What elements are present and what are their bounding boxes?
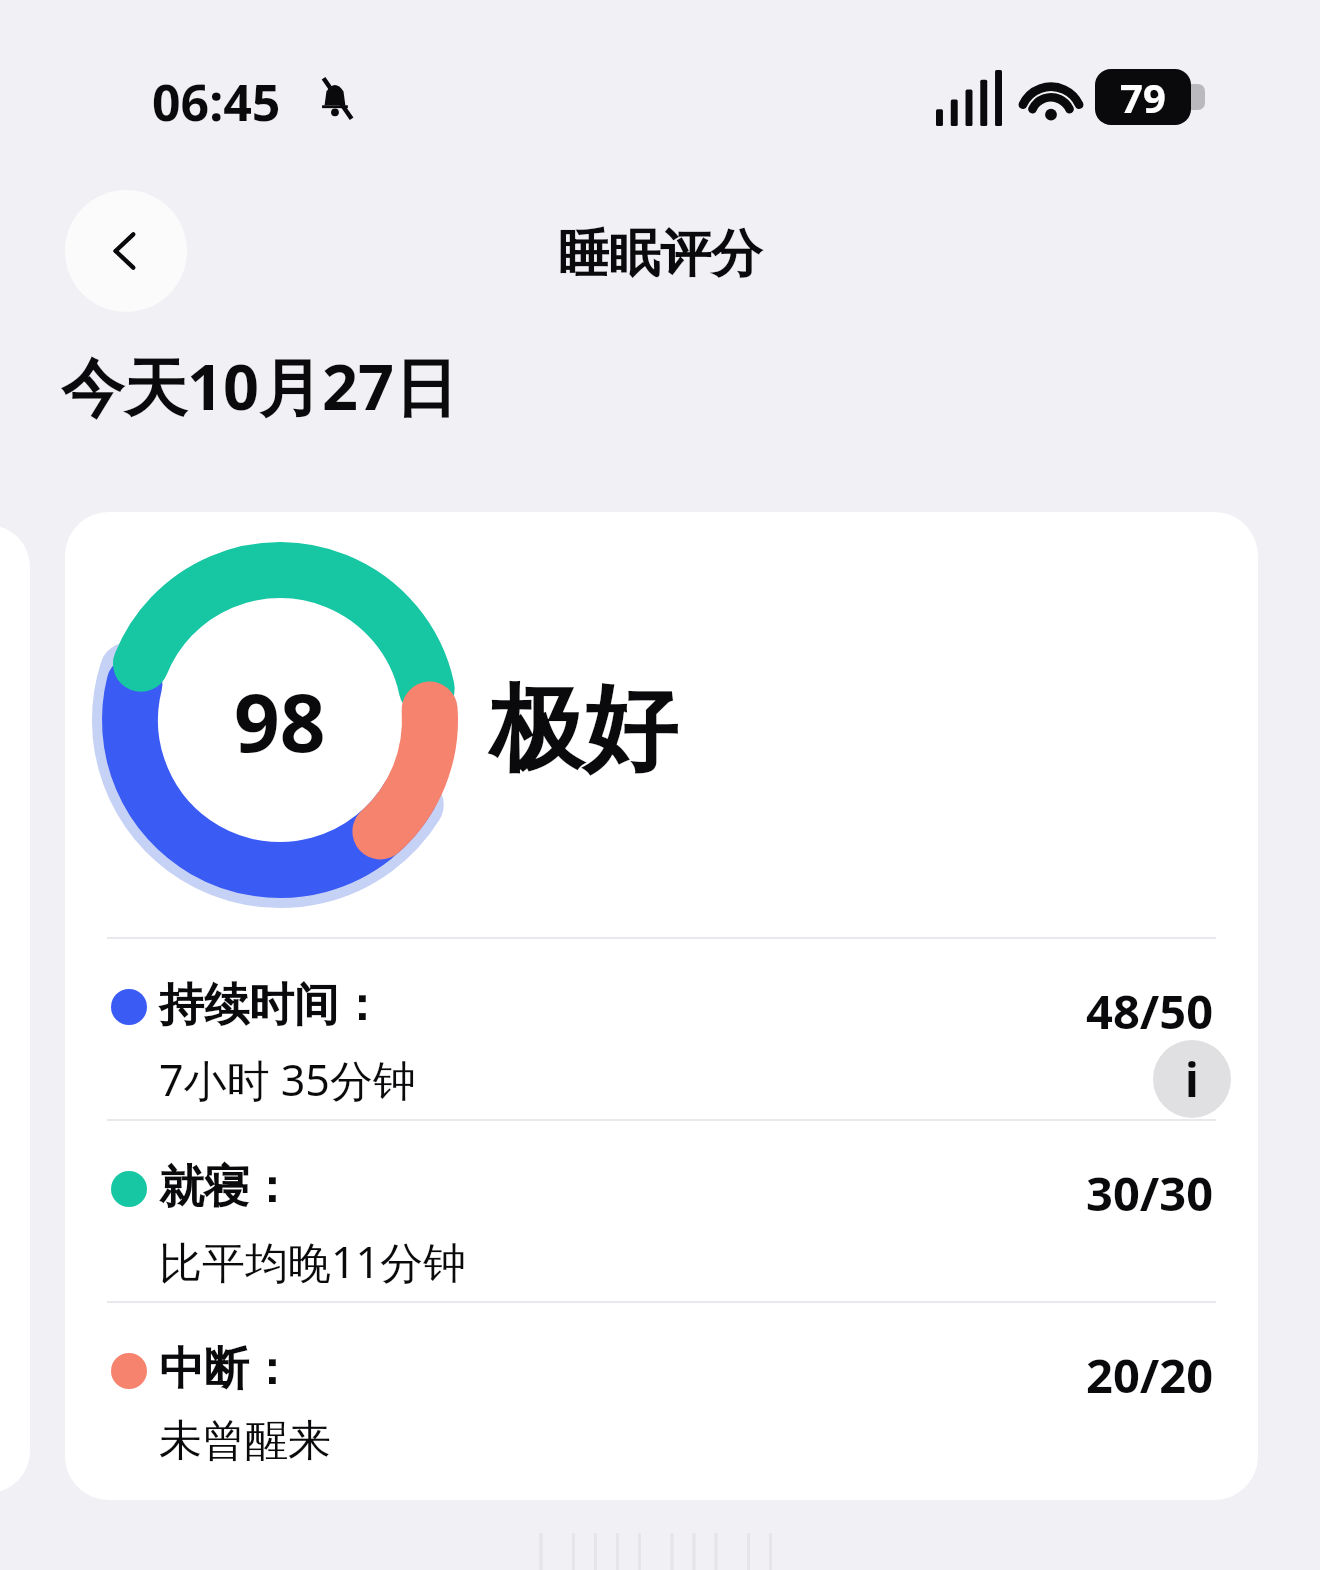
button[interactable]: Back [65,190,187,312]
staticText: | |||| ||| || [530,1520,782,1570]
staticText: 极好 [489,670,677,788]
button[interactable]: Info [1153,1040,1231,1118]
staticText: 比平均晚11分钟 [159,1232,467,1291]
staticText: 30/30 [1086,1161,1214,1225]
staticText: 未曾醒来 [159,1414,331,1468]
staticText: 中断： [159,1341,294,1398]
staticText: 持续时间： [159,977,384,1034]
button[interactable]: 就寝： [65,1121,1258,1301]
staticText: 睡眠评分 [558,222,762,286]
button[interactable]: 持续时间： [65,939,1258,1119]
staticText: 就寝： [159,1159,294,1216]
button[interactable]: 中断： [65,1303,1258,1489]
staticText: i [1185,1048,1199,1111]
staticText: 7小时 35分钟 [159,1050,416,1109]
staticText: 06:45 [152,68,281,136]
staticText: 48/50 [1086,979,1214,1043]
staticText: 79 [1120,70,1166,124]
staticText: 今天10月27日 [61,343,458,429]
staticText: 98 [234,666,326,775]
staticText: 20/20 [1086,1343,1214,1407]
